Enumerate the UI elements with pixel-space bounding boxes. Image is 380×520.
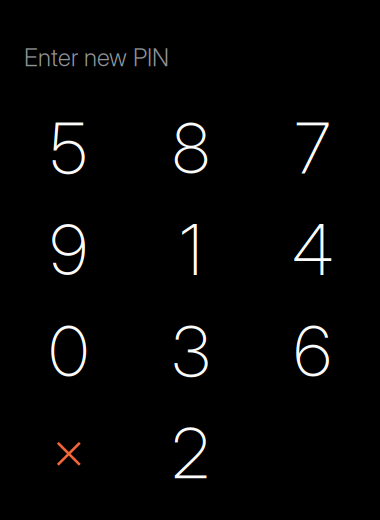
button[interactable]: 3 [130,301,252,402]
button[interactable]: 8 [130,97,252,199]
button[interactable]: 6 [252,301,374,402]
button[interactable]: 4 [252,199,374,301]
staticText: 6 [294,309,332,393]
staticText: 7 [295,106,331,190]
staticText: 1 [180,208,202,292]
staticText: 4 [292,208,333,292]
button[interactable]: 7 [252,97,374,199]
button[interactable]: 2 [130,402,252,504]
button[interactable]: 9 [8,199,130,301]
staticText: 2 [172,411,210,495]
button[interactable]: 5 [8,97,130,199]
staticText: 8 [172,106,209,190]
button[interactable]: Delete [8,402,130,504]
staticText: 9 [50,208,88,292]
staticText: 0 [49,309,89,393]
staticText: 3 [172,309,210,393]
button[interactable]: 1 [130,199,252,301]
staticText: 5 [50,106,87,190]
button[interactable]: 0 [8,301,130,402]
staticText: Enter new PIN [24,43,169,72]
